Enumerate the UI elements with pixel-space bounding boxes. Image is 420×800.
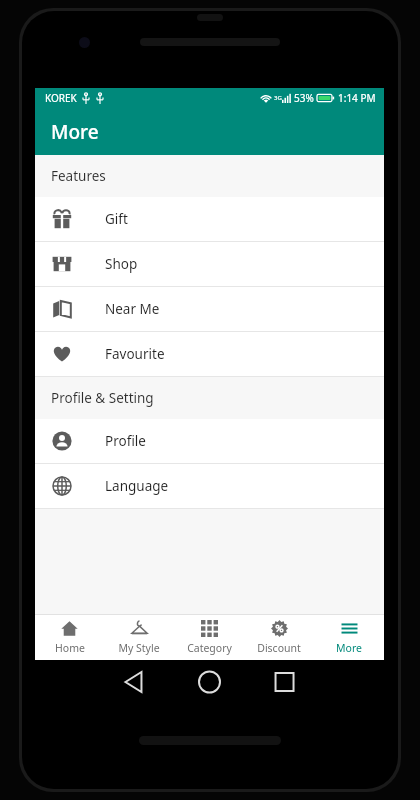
staticText: KOREK <box>45 91 77 105</box>
button[interactable]: Language <box>35 464 384 508</box>
staticText: Profile & Setting <box>51 389 154 407</box>
staticText: 53% <box>294 91 314 105</box>
button[interactable]: Favourite <box>35 332 384 376</box>
staticText: Profile <box>105 432 146 450</box>
button[interactable]: Home <box>35 614 104 660</box>
button[interactable]: Discount <box>244 614 314 660</box>
staticText: More <box>51 119 99 145</box>
staticText: Favourite <box>105 345 165 363</box>
staticText: My Style <box>118 641 160 655</box>
staticText: Gift <box>105 210 128 228</box>
button[interactable]: My Style <box>104 614 174 660</box>
button[interactable]: Category <box>174 614 244 660</box>
staticText: Shop <box>105 255 138 273</box>
button[interactable]: More <box>314 614 384 660</box>
staticText: Home <box>55 641 85 655</box>
staticText: 3G <box>274 94 282 102</box>
staticText: 1:14 PM <box>338 91 376 105</box>
button[interactable]: Gift <box>35 197 384 241</box>
staticText: More <box>336 641 362 655</box>
staticText: Language <box>105 477 169 495</box>
button[interactable]: More <box>35 108 384 155</box>
button[interactable]: Near Me <box>35 287 384 331</box>
button[interactable]: Shop <box>35 242 384 286</box>
staticText: Category <box>187 641 232 655</box>
staticText: Near Me <box>105 300 160 318</box>
button[interactable]: Profile <box>35 419 384 463</box>
staticText: Discount <box>257 641 301 655</box>
staticText: Features <box>51 167 106 185</box>
